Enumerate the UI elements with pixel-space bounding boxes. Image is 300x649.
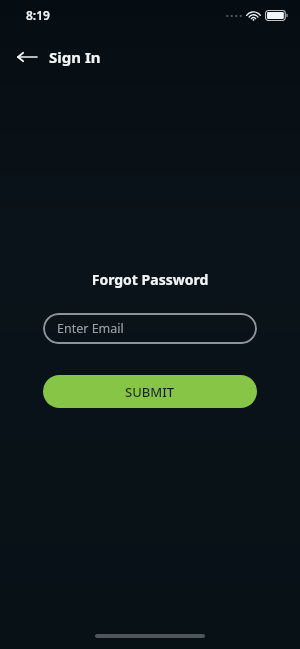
staticText: Enter Email	[57, 320, 124, 337]
staticText: SUBMIT	[125, 383, 175, 401]
staticText: Sign In	[49, 47, 101, 67]
button[interactable]: Back	[10, 40, 44, 74]
button[interactable]: Enter Email	[43, 313, 257, 344]
button[interactable]: Sign In	[47, 43, 103, 71]
staticText: 8:19	[26, 7, 50, 23]
staticText: Forgot Password	[0, 270, 300, 289]
button[interactable]: SUBMIT	[43, 375, 257, 408]
